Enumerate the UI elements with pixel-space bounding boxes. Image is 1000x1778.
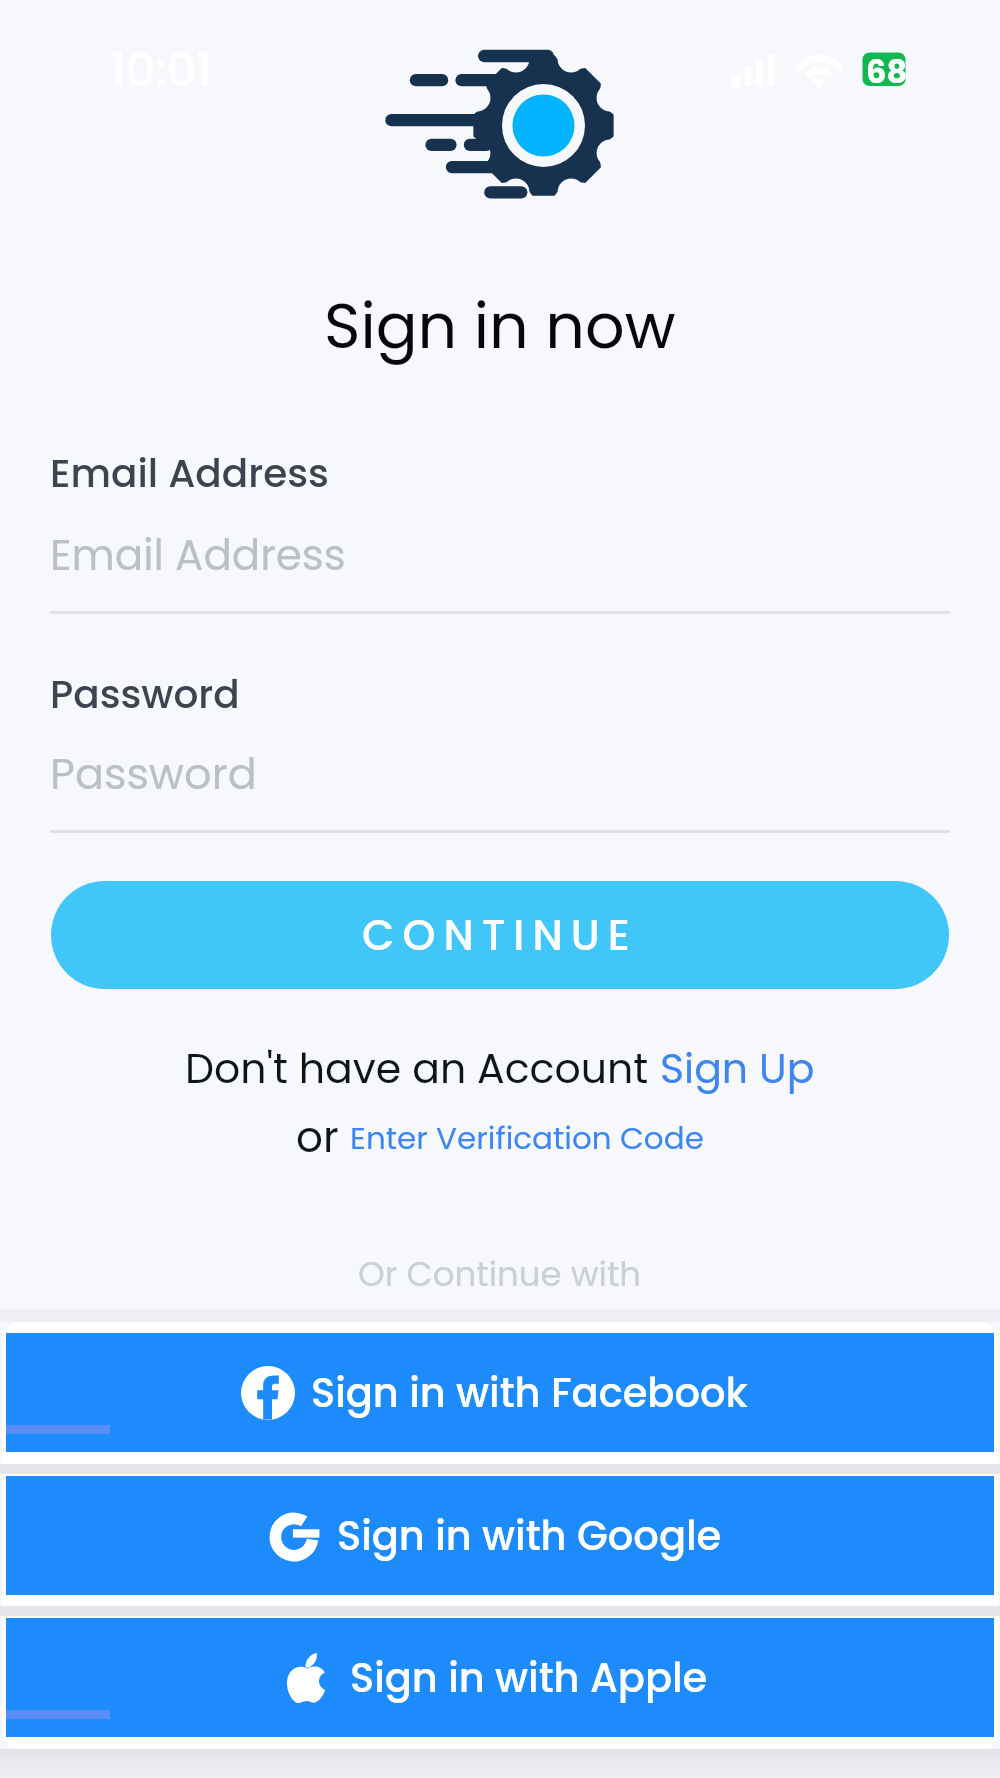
button[interactable]: Sign in with Apple [6,1618,994,1737]
staticText: Sign in with Apple [350,1650,708,1706]
staticText: Sign in with Google [337,1508,722,1564]
button[interactable]: Sign in with Google [6,1476,994,1595]
staticText: Sign in with Facebook [311,1365,748,1421]
staticText: Sign in now [324,283,676,370]
staticText: CONTINUE [362,906,638,965]
staticText: Password [50,667,240,722]
button[interactable]: Sign in with Facebook [6,1333,994,1452]
staticText: Email Address [50,446,329,501]
staticText: or [296,1108,350,1167]
staticText: Password [50,744,257,804]
staticText: Email Address [50,526,346,585]
staticText: Or Continue with [358,1250,642,1298]
button[interactable]: Sign Up [660,1040,815,1097]
staticText: 68 [866,49,908,94]
button[interactable]: Enter Verification Code [350,1116,704,1159]
staticText: Sign Up [660,1040,815,1097]
staticText: Don't have an Account [185,1040,660,1097]
button[interactable]: CONTINUE [51,881,949,989]
staticText: 10:01 [110,38,213,102]
staticText: Enter Verification Code [350,1116,704,1159]
